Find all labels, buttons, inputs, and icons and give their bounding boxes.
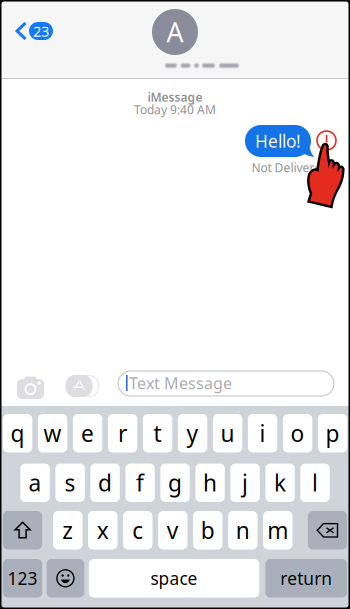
staticText: p xyxy=(326,418,340,448)
button[interactable]: f xyxy=(125,463,155,502)
staticText: x xyxy=(97,515,109,545)
button[interactable]: v xyxy=(158,511,187,549)
staticText: k xyxy=(274,468,286,498)
staticText: n xyxy=(236,515,250,545)
button[interactable]: e xyxy=(73,414,102,452)
staticText: r xyxy=(118,418,127,448)
staticText: o xyxy=(291,418,305,448)
button[interactable]: n xyxy=(228,511,257,549)
staticText: j xyxy=(242,468,248,498)
staticText: y xyxy=(187,418,199,448)
button[interactable]: b xyxy=(193,511,222,549)
staticText: c xyxy=(132,515,143,545)
button[interactable]: w xyxy=(38,414,67,452)
button[interactable]: Emoji xyxy=(46,559,84,597)
staticText: t xyxy=(154,418,162,448)
staticText: return xyxy=(280,567,332,590)
button[interactable]: Text Message field xyxy=(118,371,334,396)
staticText: space xyxy=(151,567,198,590)
button[interactable]: q xyxy=(3,414,32,452)
staticText: q xyxy=(11,418,25,448)
staticText: u xyxy=(221,418,235,448)
staticText: l xyxy=(312,468,318,498)
staticText: a xyxy=(29,468,42,498)
button[interactable]: u xyxy=(213,414,242,452)
button[interactable]: Shift xyxy=(3,511,42,549)
staticText: Not Delivered xyxy=(251,159,328,175)
button[interactable]: c xyxy=(123,511,152,549)
button[interactable]: Back to Messages, 23 unread xyxy=(13,20,55,42)
staticText: i xyxy=(260,418,266,448)
staticText: z xyxy=(62,515,73,545)
button[interactable]: d xyxy=(90,463,120,502)
button[interactable]: i xyxy=(248,414,277,452)
button[interactable]: o xyxy=(283,414,312,452)
button[interactable]: space xyxy=(89,559,259,597)
button[interactable]: k xyxy=(265,463,295,502)
button[interactable]: return xyxy=(265,559,347,597)
staticText: Text Message xyxy=(129,372,232,394)
button[interactable]: z xyxy=(53,511,82,549)
staticText: g xyxy=(168,468,182,498)
staticText: s xyxy=(65,468,76,498)
staticText: w xyxy=(44,418,62,448)
staticText: A xyxy=(166,14,183,50)
button[interactable]: s xyxy=(55,463,85,502)
button[interactable]: Camera xyxy=(17,376,44,396)
staticText: e xyxy=(81,418,94,448)
staticText: h xyxy=(203,468,217,498)
button[interactable]: p xyxy=(318,414,347,452)
staticText: f xyxy=(136,468,144,498)
button[interactable]: j xyxy=(230,463,260,502)
staticText: v xyxy=(167,515,179,545)
staticText: m xyxy=(267,515,288,545)
button[interactable]: g xyxy=(160,463,190,502)
staticText: Today 9:40 AM xyxy=(134,101,216,117)
button[interactable]: Delete xyxy=(308,511,347,549)
staticText: iMessage xyxy=(147,89,202,105)
button[interactable]: l xyxy=(300,463,330,502)
button[interactable]: Apps xyxy=(65,375,92,397)
button[interactable]: Contact details xyxy=(137,9,213,69)
staticText: b xyxy=(201,515,215,545)
staticText: 123 xyxy=(7,567,37,590)
button[interactable]: t xyxy=(143,414,172,452)
button[interactable]: m xyxy=(263,511,292,549)
staticText: 23 xyxy=(33,21,49,41)
button[interactable]: 123 xyxy=(3,559,42,597)
button[interactable]: r xyxy=(108,414,137,452)
staticText: Hello! xyxy=(255,129,301,152)
button[interactable]: a xyxy=(20,463,50,502)
button[interactable]: x xyxy=(88,511,117,549)
button[interactable]: y xyxy=(178,414,207,452)
button[interactable]: h xyxy=(195,463,225,502)
staticText: d xyxy=(98,468,112,498)
